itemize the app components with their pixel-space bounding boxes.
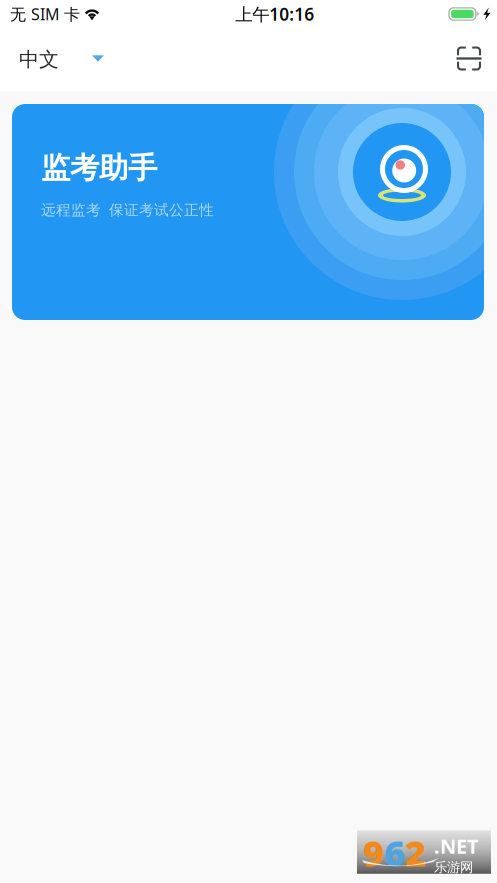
staticText: 上午10:16 bbox=[235, 2, 314, 25]
staticText: 2 bbox=[405, 829, 426, 876]
button[interactable]: Scan bbox=[441, 28, 497, 91]
staticText: 9 bbox=[363, 829, 384, 876]
staticText: 远程监考 保证考试公正性 bbox=[41, 201, 214, 219]
staticText: .NET bbox=[434, 833, 479, 859]
staticText: 中文 bbox=[19, 47, 59, 72]
button[interactable]: 监考助手 bbox=[12, 104, 484, 320]
staticText: 乐游网 bbox=[434, 859, 473, 876]
button[interactable]: 中文 bbox=[0, 28, 118, 91]
staticText: 无 SIM 卡 bbox=[10, 3, 80, 25]
staticText: 6 bbox=[384, 829, 405, 876]
staticText: 监考助手 bbox=[41, 150, 157, 186]
